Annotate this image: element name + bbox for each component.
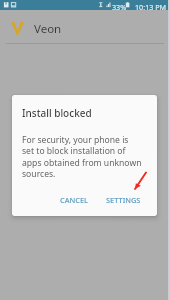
staticText: set to block installation of [22, 145, 126, 157]
staticText: CANCEL [60, 195, 89, 205]
staticText: 10:13 PM [135, 2, 167, 12]
staticText: SETTINGS [106, 195, 141, 205]
staticText: Install blocked [22, 106, 92, 120]
staticText: Veon [34, 21, 62, 37]
button[interactable]: CANCEL [55, 191, 94, 208]
button[interactable]: Veon [0, 10, 170, 43]
staticText: For security, your phone is [22, 134, 129, 146]
staticText: 33% [112, 2, 127, 12]
staticText: apps obtained from unknown [22, 157, 142, 169]
button[interactable]: SETTINGS [101, 191, 146, 208]
staticText: sources. [22, 168, 56, 180]
